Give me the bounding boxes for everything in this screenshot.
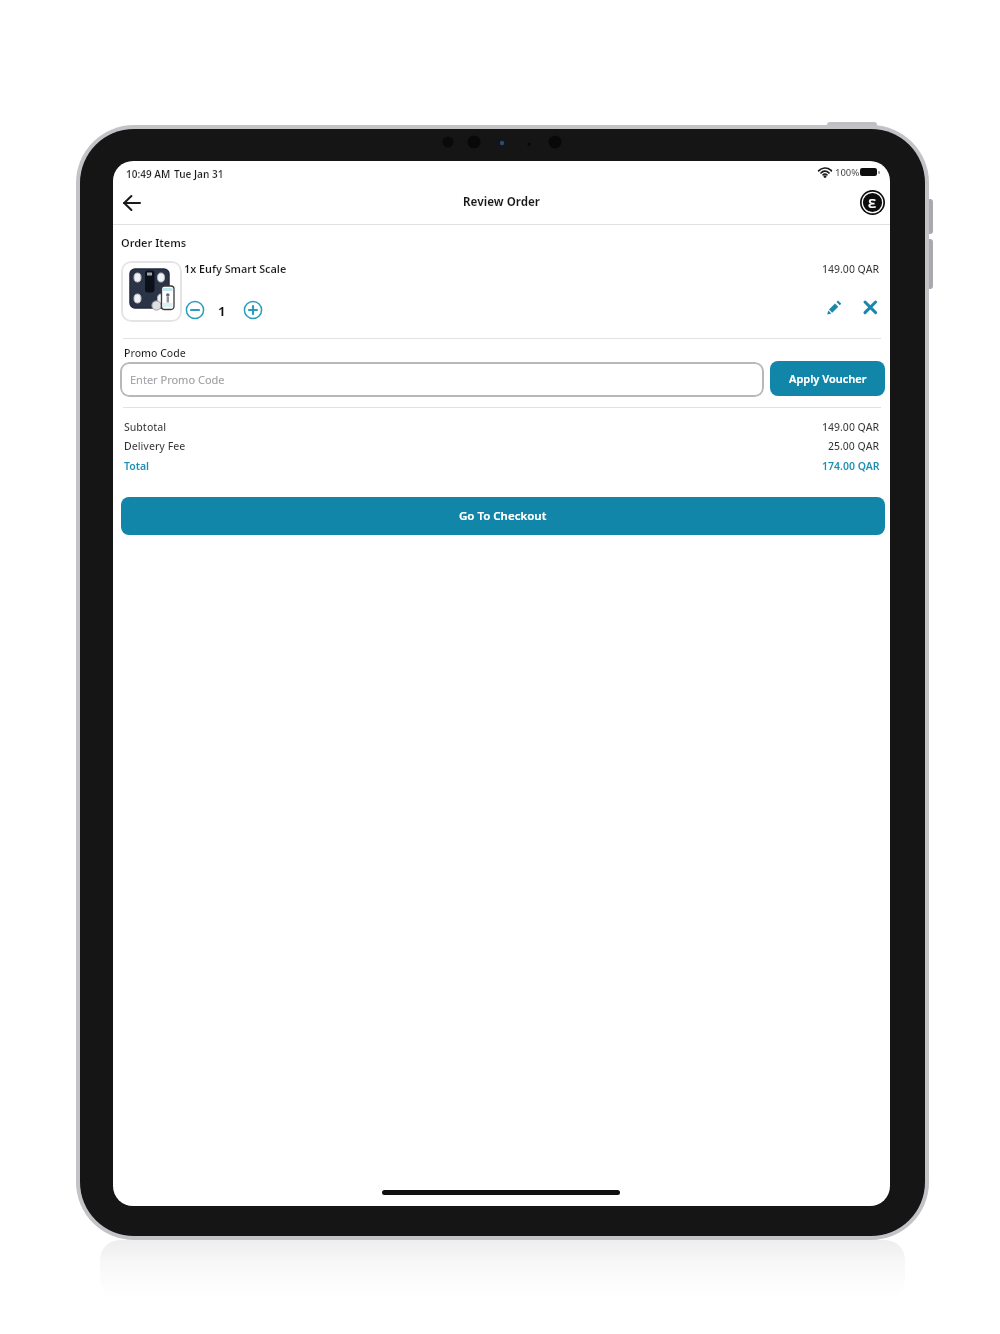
staticText: Promo Code (124, 346, 186, 360)
staticText: Delivery Fee (124, 439, 186, 453)
staticText: Tue Jan 31 (174, 167, 224, 181)
button[interactable] (186, 301, 204, 319)
staticText: 1 (218, 302, 226, 320)
button[interactable] (826, 299, 843, 316)
staticText: Enter Promo Code (130, 372, 225, 387)
staticText: 25.00 QAR (828, 439, 880, 453)
staticText: Review Order (463, 194, 540, 210)
button[interactable]: Ɛ (860, 190, 885, 215)
staticText: 1x Eufy Smart Scale (184, 261, 287, 276)
button[interactable] (863, 300, 878, 315)
staticText: Go To Checkout (459, 508, 547, 524)
staticText: Subtotal (124, 420, 167, 434)
staticText: 149.00 QAR (822, 420, 880, 434)
staticText: Apply Voucher (789, 371, 867, 386)
staticText: Order Items (121, 235, 187, 250)
staticText: Total (124, 459, 150, 473)
staticText: 10:49 AM (126, 167, 171, 181)
button[interactable]: Apply Voucher (770, 361, 885, 396)
staticText: 174.00 QAR (822, 459, 880, 473)
staticText: 149.00 QAR (822, 262, 880, 276)
button[interactable] (244, 301, 262, 319)
staticText: 100% (835, 166, 860, 179)
button[interactable]: Go To Checkout (121, 497, 885, 535)
staticText: Ɛ (868, 194, 877, 212)
button[interactable] (121, 192, 143, 214)
button[interactable]: Enter Promo Code (120, 362, 764, 397)
